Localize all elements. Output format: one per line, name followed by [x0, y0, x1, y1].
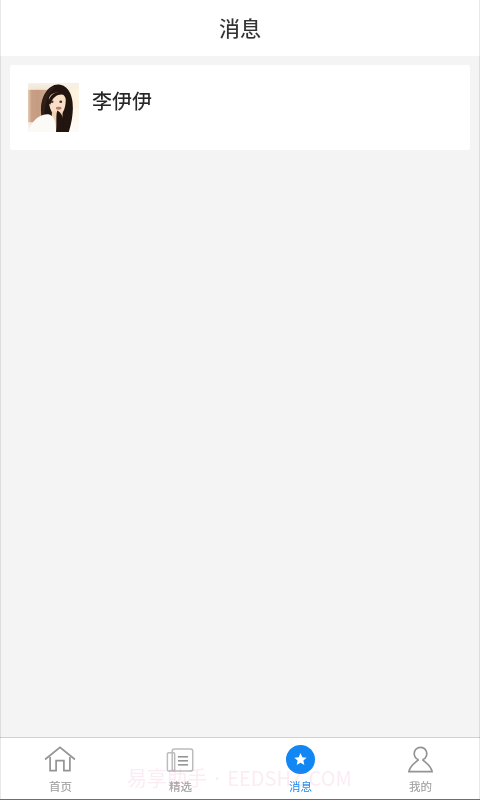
button[interactable]: 消息 [240, 738, 360, 800]
button[interactable]: 首页 [0, 738, 120, 800]
staticText: 李伊伊 [92, 86, 152, 115]
button[interactable]: 李伊伊 [10, 65, 470, 150]
other: 消息 [286, 745, 315, 774]
staticText: 消息 [289, 778, 312, 795]
staticText: 易享助手 · EEDSHZ.COM [127, 763, 352, 792]
staticText: 首页 [49, 778, 72, 795]
button[interactable]: 我的 [360, 738, 480, 800]
staticText: 精选 [169, 778, 192, 795]
other: 精选 [167, 746, 193, 772]
staticText: 消息 [219, 12, 261, 42]
other: 首页 [45, 746, 75, 772]
staticText: 我的 [409, 778, 432, 795]
button[interactable]: 精选 [120, 738, 240, 800]
other: 我的 [407, 746, 434, 773]
